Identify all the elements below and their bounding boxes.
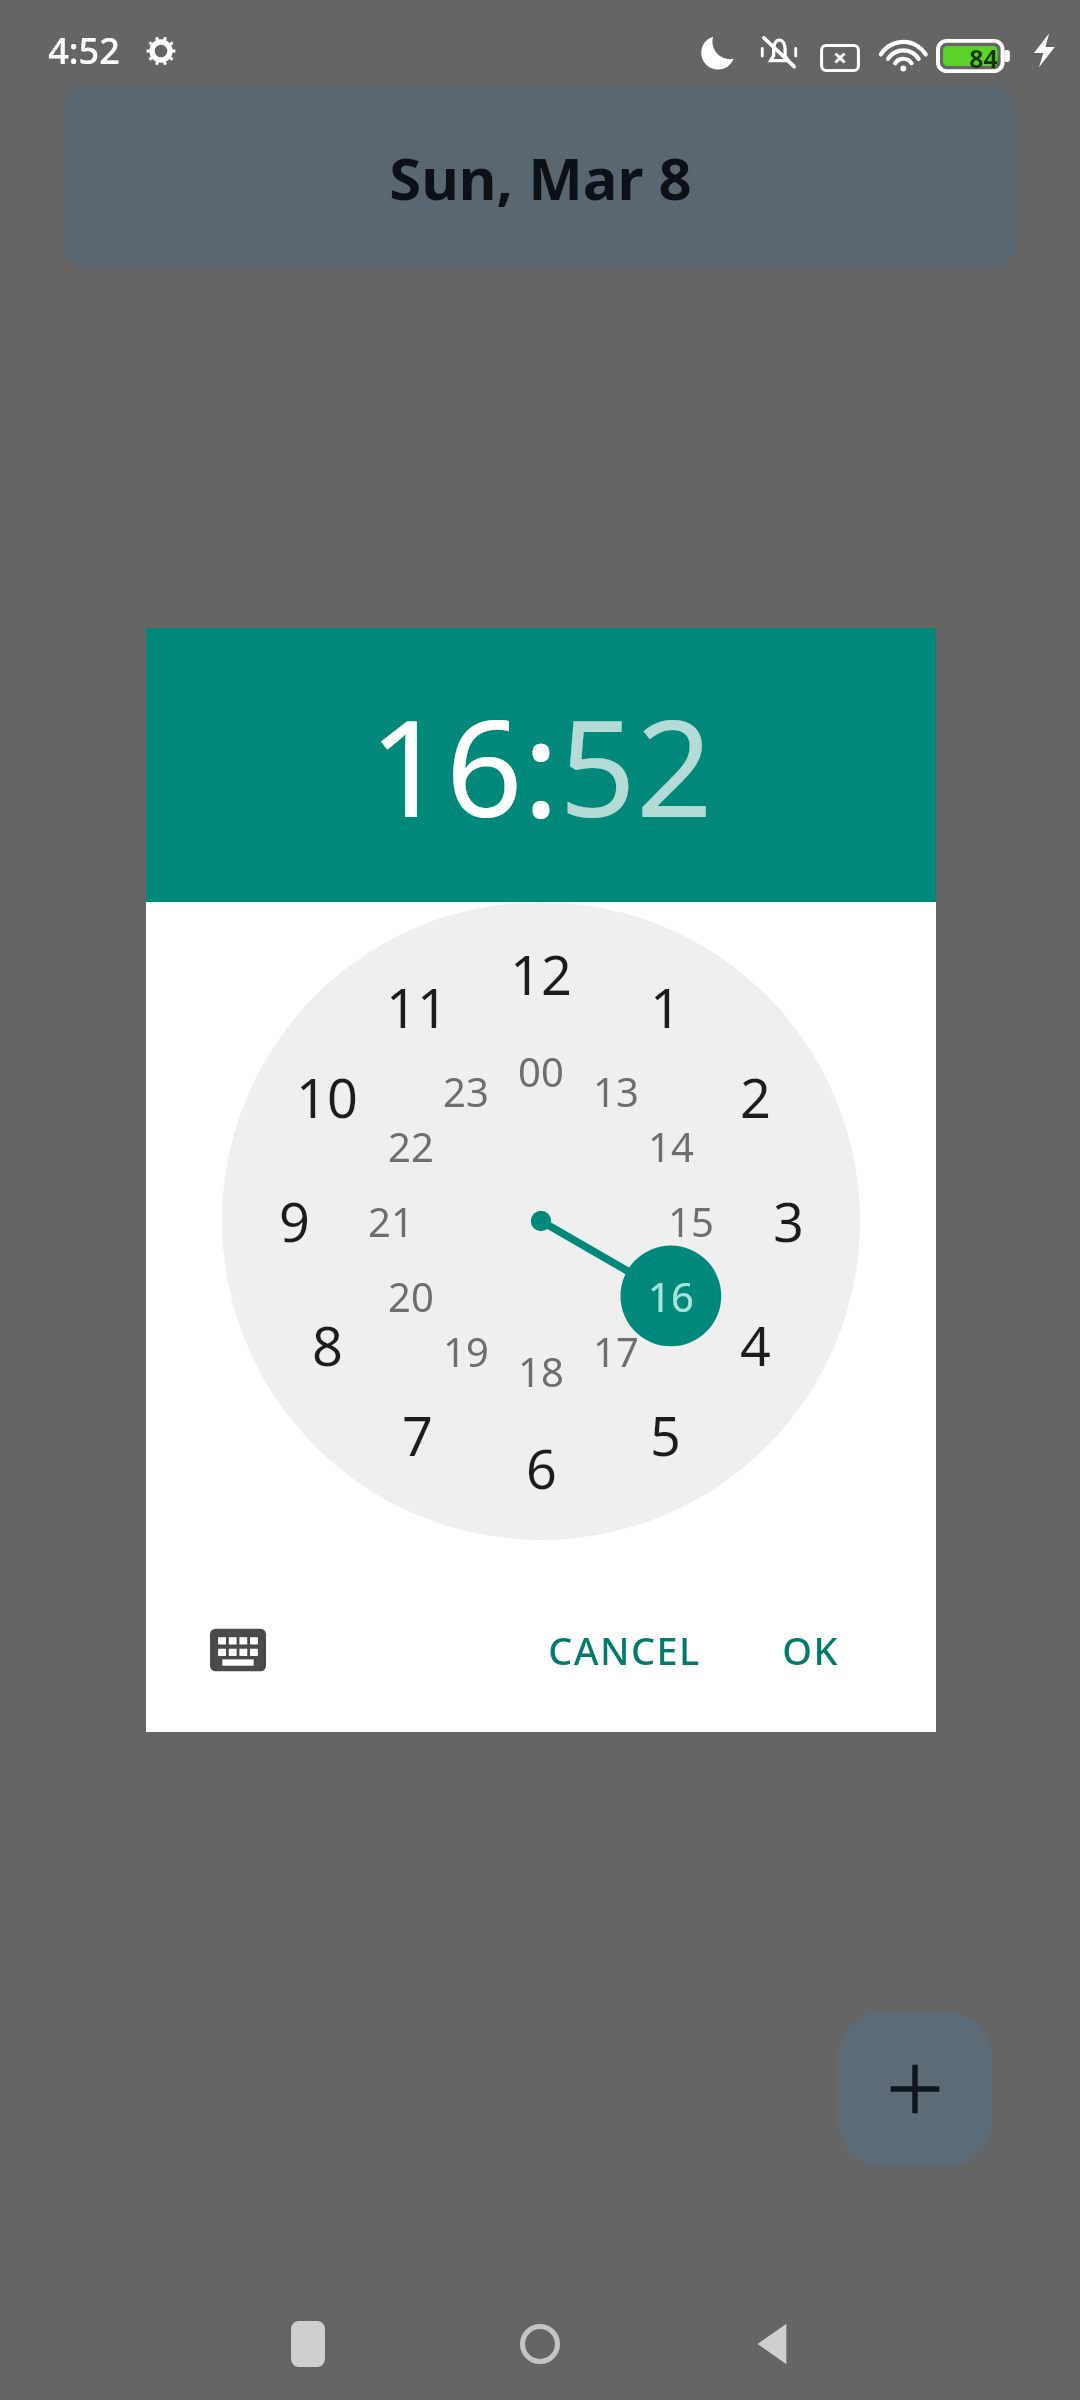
- button[interactable]: Recents: [270, 2306, 346, 2382]
- staticText: CANCEL: [548, 1624, 701, 1676]
- staticText: 7: [402, 1398, 433, 1472]
- staticText: 84: [969, 41, 998, 75]
- staticText: 21: [368, 1194, 414, 1248]
- staticText: :: [523, 674, 559, 857]
- button[interactable]: OK: [782, 1624, 839, 1676]
- staticText: Sun, Mar 8: [389, 138, 692, 217]
- staticText: 13: [593, 1064, 639, 1118]
- staticText: 18: [518, 1344, 564, 1398]
- staticText: 11: [386, 970, 448, 1044]
- staticText: 15: [668, 1194, 714, 1248]
- staticText: 5: [650, 1398, 681, 1472]
- staticText: 4:52: [48, 26, 120, 75]
- button[interactable]: Switch to text input mode: [194, 1606, 282, 1694]
- staticText: 22: [388, 1119, 434, 1173]
- staticText: 16: [369, 674, 523, 857]
- staticText: 3: [773, 1184, 804, 1258]
- button[interactable]: CANCEL: [548, 1624, 701, 1676]
- button[interactable]: Sun, Mar 8: [64, 86, 1016, 268]
- staticText: 20: [388, 1269, 434, 1323]
- staticText: 12: [510, 937, 572, 1011]
- staticText: 8: [312, 1308, 343, 1382]
- staticText: 4: [740, 1308, 771, 1382]
- staticText: 6: [526, 1431, 557, 1505]
- staticText: 23: [443, 1064, 489, 1118]
- button[interactable]: Add alarm: [838, 2012, 992, 2166]
- staticText: 1: [650, 970, 681, 1044]
- button[interactable]: Back: [734, 2306, 810, 2382]
- staticText: 16: [648, 1269, 694, 1323]
- staticText: 14: [648, 1119, 694, 1173]
- staticText: 10: [296, 1060, 358, 1134]
- staticText: 52: [559, 674, 713, 857]
- staticText: 00: [518, 1044, 564, 1098]
- button[interactable]: Home: [502, 2306, 578, 2382]
- staticText: 9: [279, 1184, 310, 1258]
- staticText: 2: [740, 1060, 771, 1134]
- button[interactable]: 16: [369, 674, 523, 857]
- staticText: 17: [593, 1324, 639, 1378]
- staticText: 19: [443, 1324, 489, 1378]
- staticText: OK: [782, 1624, 839, 1676]
- button[interactable]: 52: [559, 674, 713, 857]
- button[interactable]: 12: [222, 902, 860, 1540]
